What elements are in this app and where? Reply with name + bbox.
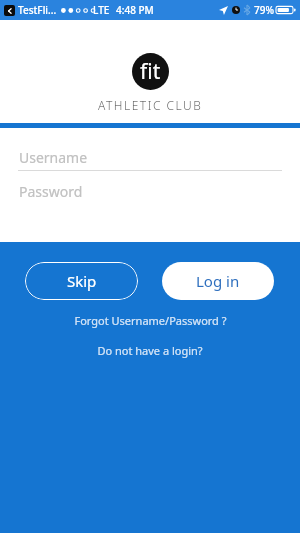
button[interactable]: Back — [4, 5, 15, 16]
staticText: Skip — [67, 271, 97, 291]
staticText: TestFli... — [18, 3, 57, 17]
staticText: 79% — [254, 3, 274, 17]
button[interactable]: Skip — [25, 262, 138, 300]
button[interactable]: Do not have a login? — [89, 341, 211, 360]
button[interactable]: Username — [0, 144, 300, 170]
staticText: Username — [19, 148, 88, 167]
button[interactable]: Password — [0, 178, 300, 204]
button[interactable]: Log in — [162, 262, 274, 300]
button[interactable]: Forgot Username/Password ? — [66, 311, 235, 330]
staticText: LTE — [93, 3, 110, 17]
staticText: ATHLETIC CLUB — [98, 97, 203, 113]
staticText: Log in — [196, 271, 240, 291]
staticText: fit — [140, 57, 161, 86]
staticText: Password — [19, 182, 83, 201]
staticText: 4:48 PM — [116, 3, 154, 17]
staticText: Forgot Username/Password ? — [74, 313, 227, 328]
staticText: Do not have a login? — [97, 343, 203, 358]
